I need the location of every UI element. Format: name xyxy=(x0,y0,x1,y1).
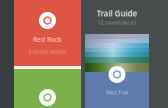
staticText: 4 routes nearby xyxy=(28,48,66,55)
button[interactable]: Red Rock xyxy=(14,0,81,66)
staticText: Red Rock xyxy=(33,35,62,44)
staticText: Mist Trail xyxy=(106,89,128,96)
button[interactable] xyxy=(14,69,81,108)
staticText: Trail Guide xyxy=(96,8,137,19)
staticText: 12 saved places xyxy=(97,19,136,26)
button[interactable]: Mist Trail xyxy=(85,34,149,108)
